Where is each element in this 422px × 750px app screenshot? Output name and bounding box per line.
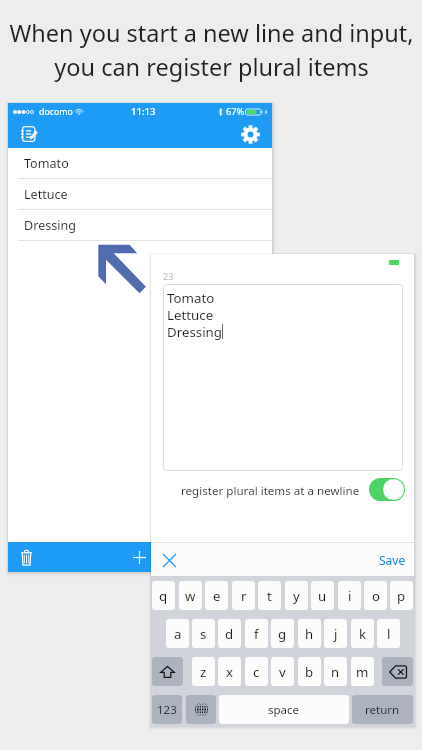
button[interactable]: s — [192, 619, 215, 648]
staticText: 11:13 — [131, 105, 156, 118]
button[interactable]: Dressing — [8, 210, 272, 241]
button[interactable]: n — [324, 657, 347, 686]
staticText: a — [174, 625, 182, 643]
staticText: return — [365, 702, 400, 718]
staticText: c — [253, 663, 260, 681]
button[interactable]: q — [152, 581, 175, 610]
staticText: Lettuce — [167, 306, 214, 323]
staticText: Save — [379, 552, 406, 568]
staticText: o — [372, 587, 380, 605]
staticText: Lettuce — [24, 186, 68, 203]
button[interactable]: i — [338, 581, 361, 610]
button[interactable]: c — [245, 657, 268, 686]
staticText: g — [278, 625, 287, 643]
staticText: y — [293, 587, 300, 605]
staticText: d — [225, 625, 234, 643]
staticText: j — [334, 625, 338, 643]
staticText: i — [348, 587, 352, 605]
button[interactable]: space — [219, 695, 349, 724]
button[interactable]: Toggle register plural items — [369, 478, 405, 501]
button[interactable]: Lettuce — [8, 179, 272, 210]
button[interactable]: e — [205, 581, 228, 610]
button[interactable]: h — [298, 619, 321, 648]
button[interactable]: w — [179, 581, 202, 610]
staticText: When you start a new line and input, — [9, 17, 414, 49]
staticText: docomo — [39, 106, 73, 118]
button[interactable]: r — [232, 581, 255, 610]
staticText: register plural items at a newline — [181, 483, 360, 499]
button[interactable]: Delete — [12, 543, 40, 571]
staticText: p — [397, 587, 406, 605]
button[interactable]: Close — [156, 547, 182, 573]
staticText: w — [185, 587, 196, 605]
staticText: u — [318, 587, 327, 605]
button[interactable]: g — [271, 619, 294, 648]
staticText: z — [200, 663, 207, 681]
button[interactable]: Switch keyboard — [186, 695, 216, 724]
button[interactable]: f — [245, 619, 268, 648]
staticText: Tomato — [24, 155, 69, 172]
staticText: Dressing — [167, 323, 222, 340]
staticText: t — [267, 587, 272, 605]
button[interactable]: o — [364, 581, 387, 610]
button[interactable]: y — [285, 581, 308, 610]
staticText: k — [359, 625, 367, 643]
button[interactable]: Shift — [152, 657, 183, 686]
button[interactable]: Tomato — [8, 148, 272, 179]
staticText: n — [331, 663, 340, 681]
button[interactable]: return — [352, 695, 413, 724]
button[interactable]: Backspace — [382, 657, 413, 686]
staticText: q — [159, 587, 168, 605]
button[interactable]: l — [377, 619, 400, 648]
staticText: Tomato — [167, 289, 215, 306]
staticText: r — [241, 587, 247, 605]
button[interactable]: b — [298, 657, 321, 686]
staticText: 67% — [226, 105, 245, 118]
staticText: 123 — [157, 702, 177, 718]
button[interactable]: t — [258, 581, 281, 610]
button[interactable]: u — [311, 581, 334, 610]
button[interactable]: a — [166, 619, 189, 648]
button[interactable]: Tomato — [163, 284, 403, 471]
staticText: b — [305, 663, 314, 681]
staticText: you can register plural items — [54, 51, 369, 83]
button[interactable]: z — [192, 657, 215, 686]
staticText: l — [387, 625, 391, 643]
button[interactable]: Save — [379, 552, 406, 568]
staticText: h — [305, 625, 314, 643]
button[interactable]: k — [351, 619, 374, 648]
button[interactable]: m — [351, 657, 374, 686]
staticText: Dressing — [24, 217, 77, 234]
staticText: 23 — [163, 270, 174, 282]
button[interactable]: p — [390, 581, 413, 610]
staticText: v — [279, 663, 286, 681]
button[interactable]: Add — [125, 543, 153, 571]
button[interactable]: v — [271, 657, 294, 686]
button[interactable]: x — [218, 657, 241, 686]
button[interactable]: New note — [14, 120, 42, 148]
button[interactable]: 123 — [152, 695, 182, 724]
staticText: space — [268, 702, 300, 718]
button[interactable]: d — [218, 619, 241, 648]
staticText: e — [213, 587, 221, 605]
button[interactable]: j — [324, 619, 347, 648]
staticText: x — [226, 663, 233, 681]
button[interactable]: Settings — [236, 120, 264, 148]
staticText: s — [200, 625, 207, 643]
staticText: m — [356, 663, 369, 681]
staticText: f — [254, 625, 259, 643]
